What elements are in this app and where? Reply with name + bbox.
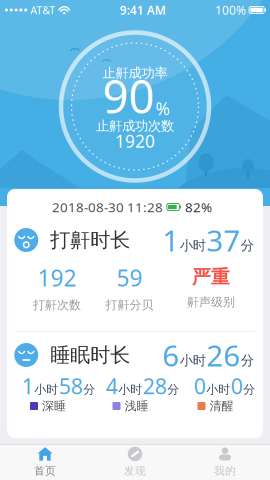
staticText: 100% (215, 2, 246, 18)
staticText: 止鼾成功次数 (96, 118, 174, 134)
staticText: 0 (194, 372, 206, 400)
staticText: 分 (241, 237, 254, 254)
staticText: 深睡 (42, 399, 66, 413)
staticText: 发现 (124, 464, 146, 477)
staticText: 鼾声级别 (187, 295, 235, 309)
staticText: 192 (37, 263, 76, 293)
staticText: AT&T (30, 3, 55, 17)
staticText: 小时 (206, 382, 230, 397)
staticText: 分 (83, 382, 95, 397)
staticText: 打鼾分贝 (105, 298, 153, 312)
staticText: 打鼾时长 (50, 228, 130, 252)
staticText: 59 (116, 263, 142, 293)
staticText: 1920 (115, 129, 155, 152)
staticText: 37 (206, 220, 240, 259)
button[interactable]: 发现 (90, 444, 180, 480)
staticText: 6 (162, 335, 179, 374)
staticText: 26 (206, 335, 240, 374)
staticText: 我的 (214, 464, 236, 477)
staticText: 分 (243, 382, 255, 397)
staticText: 9:41 AM (120, 2, 166, 18)
button[interactable]: 我的 (180, 444, 270, 480)
staticText: 90 (102, 66, 154, 126)
button[interactable]: 睡眠时长 (7, 338, 263, 372)
staticText: 2018-08-30 11:28 (52, 198, 163, 216)
staticText: 1 (22, 372, 34, 400)
staticText: 58 (59, 372, 83, 400)
staticText: 4 (106, 372, 118, 400)
staticText: 小时 (118, 382, 142, 397)
staticText: 小时 (180, 237, 206, 254)
staticText: 浅睡 (124, 399, 148, 413)
staticText: 止鼾成功率 (102, 65, 167, 81)
staticText: 28 (143, 372, 167, 400)
staticText: 小时 (180, 352, 206, 369)
staticText: 睡眠时长 (50, 343, 130, 367)
staticText: % (155, 97, 169, 120)
button[interactable]: 打鼾时长 (7, 223, 263, 257)
staticText: 清醒 (209, 399, 233, 413)
staticText: 1 (162, 220, 179, 259)
staticText: 分 (167, 382, 179, 397)
staticText: 82% (185, 198, 212, 216)
staticText: 严重 (192, 266, 230, 289)
staticText: 小时 (34, 382, 58, 397)
staticText: 分 (241, 352, 254, 369)
staticText: 首页 (34, 464, 56, 477)
staticText: 0 (231, 372, 243, 400)
button[interactable]: 首页 (0, 444, 90, 480)
staticText: 打鼾次数 (33, 298, 81, 312)
